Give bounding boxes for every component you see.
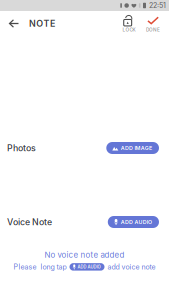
- button[interactable]: ADD AUDIO: [108, 216, 159, 228]
- staticText: Photos: [7, 143, 36, 153]
- staticText: ADD AUDIO: [77, 264, 100, 269]
- staticText: ADD AUDIO: [121, 219, 152, 225]
- staticText: add voice note: [107, 263, 155, 271]
- button[interactable]: DONE: [141, 12, 165, 34]
- staticText: Please long tap: [13, 263, 66, 271]
- staticText: NOTE: [29, 18, 55, 29]
- button[interactable]: ADD IMAGE: [106, 142, 159, 154]
- staticText: ADD IMAGE: [121, 145, 152, 151]
- staticText: No voice note added: [44, 250, 124, 260]
- staticText: LOCK: [122, 27, 135, 32]
- staticText: Voice Note: [7, 217, 52, 227]
- staticText: 22:51: [149, 1, 166, 10]
- button[interactable]: LOCK: [117, 12, 141, 34]
- staticText: DONE: [146, 27, 160, 32]
- button[interactable]: Back: [4, 12, 24, 34]
